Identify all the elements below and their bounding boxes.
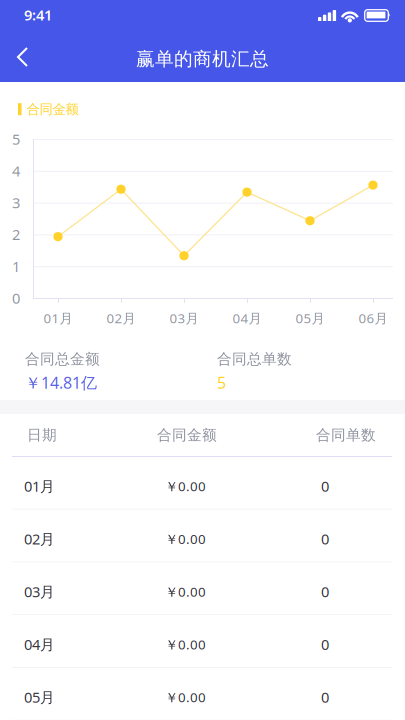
staticText: ￥0.00 [165, 635, 206, 653]
staticText: 0 [12, 288, 20, 308]
staticText: 合同单数 [316, 426, 376, 444]
staticText: ￥0.00 [165, 530, 206, 548]
staticText: 02月 [24, 529, 55, 548]
button[interactable]: 02月 [0, 510, 405, 563]
staticText: 04月 [24, 634, 55, 654]
staticText: 02月 [106, 309, 135, 327]
staticText: 05月 [24, 687, 55, 707]
staticText: 赢单的商机汇总 [136, 47, 269, 70]
staticText: ￥0.00 [165, 583, 206, 600]
staticText: ￥14.81亿 [25, 372, 97, 393]
staticText: 1 [12, 256, 20, 276]
button[interactable]: 01月 [0, 457, 405, 510]
staticText: 06月 [358, 309, 387, 327]
button[interactable]: 05月 [0, 668, 405, 720]
staticText: 日期 [27, 426, 57, 444]
staticText: 合同总单数 [217, 350, 292, 368]
staticText: 0 [321, 476, 329, 496]
button[interactable]: Back [4, 40, 48, 82]
staticText: 01月 [24, 476, 55, 496]
staticText: 合同总金额 [25, 350, 100, 368]
staticText: 05月 [295, 309, 324, 327]
staticText: 0 [321, 529, 329, 548]
staticText: 03月 [169, 309, 198, 327]
staticText: 5 [12, 129, 20, 149]
staticText: 0 [321, 582, 329, 601]
staticText: 0 [321, 634, 329, 654]
staticText: 9:41 [24, 5, 52, 24]
staticText: 合同金额 [157, 426, 217, 444]
staticText: ￥0.00 [165, 477, 206, 495]
button[interactable]: 04月 [0, 615, 405, 668]
staticText: 4 [12, 161, 20, 181]
staticText: 5 [217, 372, 226, 393]
staticText: 合同金额 [26, 101, 78, 117]
staticText: 01月 [43, 309, 72, 327]
staticText: ￥0.00 [165, 688, 206, 706]
staticText: 03月 [24, 582, 55, 601]
button[interactable]: 03月 [0, 562, 405, 615]
staticText: 2 [12, 225, 20, 244]
staticText: 0 [321, 687, 329, 707]
staticText: 3 [12, 193, 20, 212]
staticText: 04月 [232, 309, 261, 327]
